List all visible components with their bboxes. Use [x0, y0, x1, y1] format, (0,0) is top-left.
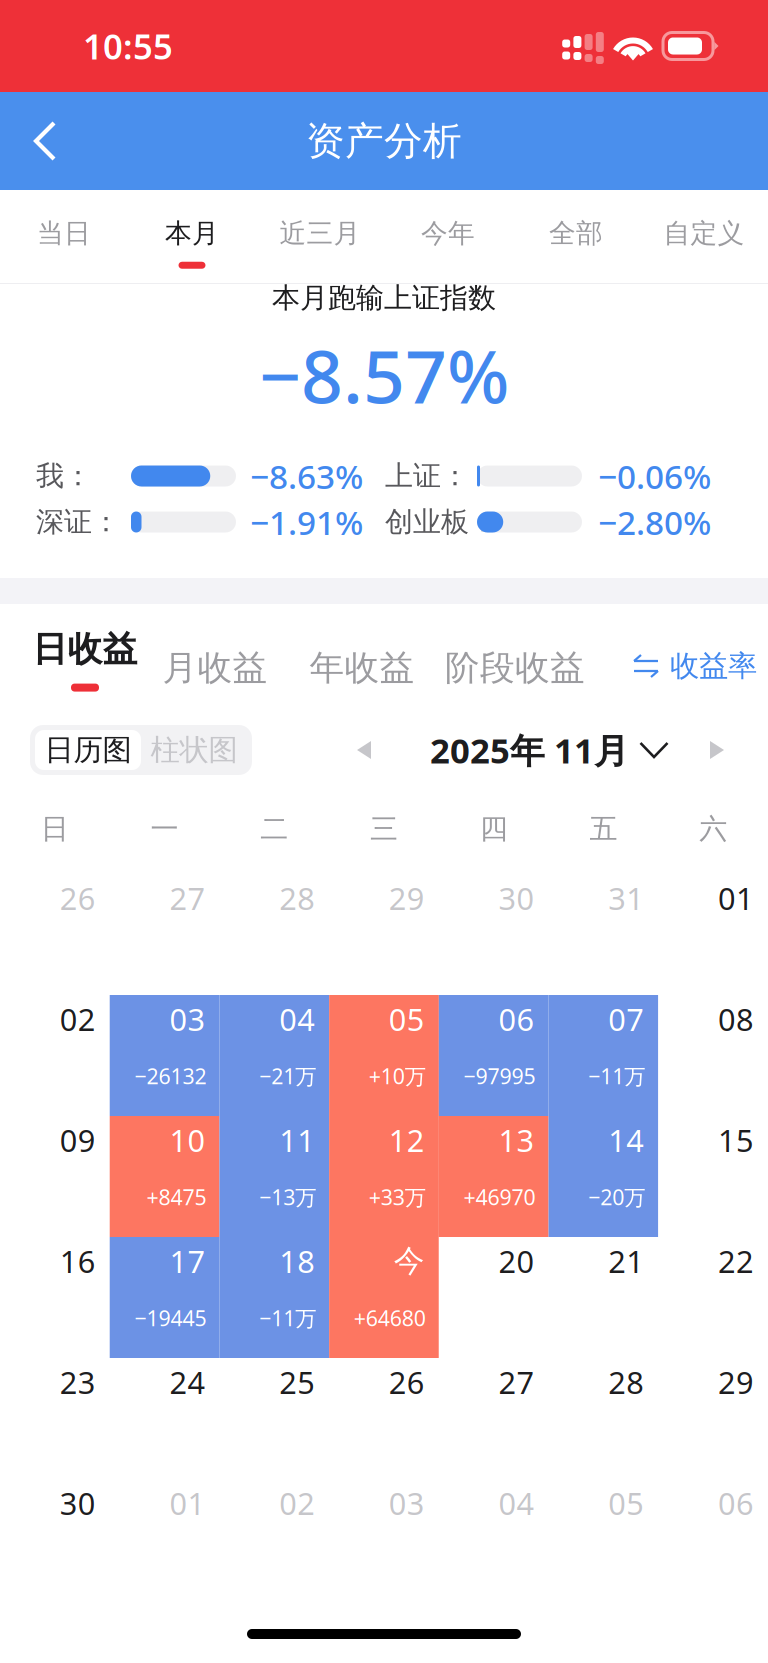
button[interactable]: 柱状图 — [141, 730, 247, 770]
button[interactable]: 近三月 — [256, 190, 384, 283]
staticText: 柱状图 — [150, 732, 237, 768]
button[interactable]: 30 — [439, 874, 549, 995]
button[interactable]: Back — [0, 92, 94, 190]
button[interactable]: 当日 — [0, 190, 128, 283]
button[interactable]: 29 — [658, 1358, 768, 1479]
staticText: 全部 — [549, 217, 603, 250]
staticText: 日历图 — [44, 732, 131, 768]
staticText: −20万 — [588, 1183, 645, 1211]
button[interactable]: 28 — [549, 1358, 658, 1479]
button[interactable]: 28 — [219, 874, 329, 995]
button[interactable]: 01 — [110, 1479, 219, 1600]
staticText: 日收益 — [32, 628, 137, 671]
button[interactable]: 日历图 — [35, 730, 141, 770]
staticText: 近三月 — [279, 217, 360, 250]
staticText: 当日 — [37, 217, 91, 250]
staticText: 06 — [499, 999, 535, 1039]
button[interactable]: 阶段收益 — [440, 604, 590, 700]
staticText: 20 — [499, 1241, 535, 1281]
staticText: 05 — [608, 1483, 644, 1523]
staticText: 28 — [279, 878, 315, 918]
button[interactable]: 10 — [110, 1116, 219, 1237]
button[interactable]: 09 — [0, 1116, 110, 1237]
staticText: 日 — [41, 812, 69, 846]
staticText: 07 — [608, 999, 644, 1039]
staticText: +8475 — [146, 1183, 206, 1211]
staticText: 30 — [499, 878, 535, 918]
staticText: 二 — [260, 812, 288, 846]
button[interactable]: 14 — [549, 1116, 658, 1237]
button[interactable]: 11 — [219, 1116, 329, 1237]
button[interactable]: 17 — [110, 1237, 219, 1358]
button[interactable]: 27 — [110, 874, 219, 995]
staticText: 15 — [718, 1120, 754, 1160]
staticText: +64680 — [354, 1304, 426, 1332]
button[interactable]: 21 — [549, 1237, 658, 1358]
button[interactable]: 26 — [0, 874, 110, 995]
staticText: 三 — [370, 812, 398, 846]
button[interactable]: 23 — [0, 1358, 110, 1479]
staticText: 我： — [36, 459, 92, 493]
staticText: +46970 — [464, 1183, 536, 1211]
button[interactable]: 06 — [439, 995, 549, 1116]
staticText: 10 — [169, 1120, 205, 1160]
button[interactable]: 24 — [110, 1358, 219, 1479]
button[interactable]: 04 — [219, 995, 329, 1116]
button[interactable]: 31 — [549, 874, 658, 995]
staticText: 阶段收益 — [445, 647, 585, 689]
button[interactable]: 01 — [658, 874, 768, 995]
button[interactable]: 18 — [219, 1237, 329, 1358]
button[interactable]: 02 — [0, 995, 110, 1116]
button[interactable]: 自定义 — [640, 190, 768, 283]
button[interactable]: 12 — [329, 1116, 439, 1237]
button[interactable]: 今 — [329, 1237, 439, 1358]
button[interactable]: 05 — [329, 995, 439, 1116]
button[interactable]: 02 — [219, 1479, 329, 1600]
button[interactable]: 2025年 11月 — [430, 700, 680, 800]
staticText: −1.91% — [250, 500, 363, 544]
button[interactable]: 本月 — [128, 190, 256, 283]
button[interactable]: 15 — [658, 1116, 768, 1237]
staticText: 14 — [608, 1120, 644, 1160]
button[interactable]: 13 — [439, 1116, 549, 1237]
button[interactable]: Previous month — [334, 700, 394, 800]
staticText: −97995 — [464, 1062, 536, 1090]
button[interactable]: 今年 — [384, 190, 512, 283]
staticText: −19445 — [134, 1304, 206, 1332]
button[interactable]: 16 — [0, 1237, 110, 1358]
button[interactable]: 年收益 — [302, 604, 422, 700]
staticText: −26132 — [134, 1062, 206, 1090]
button[interactable]: 22 — [658, 1237, 768, 1358]
staticText: 26 — [389, 1362, 425, 1402]
staticText: 年收益 — [309, 647, 414, 689]
staticText: −2.80% — [598, 500, 711, 544]
button[interactable]: Next month — [687, 700, 747, 800]
button[interactable]: 07 — [549, 995, 658, 1116]
button[interactable]: 29 — [329, 874, 439, 995]
button[interactable]: 06 — [658, 1479, 768, 1600]
staticText: 12 — [389, 1120, 425, 1160]
button[interactable]: 30 — [0, 1479, 110, 1600]
button[interactable]: 收益率 — [632, 604, 762, 700]
staticText: 上证： — [385, 459, 469, 493]
button[interactable]: 04 — [439, 1479, 549, 1600]
button[interactable]: 26 — [329, 1358, 439, 1479]
button[interactable]: 20 — [439, 1237, 549, 1358]
staticText: 09 — [60, 1120, 96, 1160]
button[interactable]: 月收益 — [155, 604, 275, 700]
button[interactable]: 日收益 — [25, 604, 145, 700]
button[interactable]: 25 — [219, 1358, 329, 1479]
staticText: 18 — [279, 1241, 315, 1281]
staticText: 05 — [389, 999, 425, 1039]
staticText: 04 — [499, 1483, 535, 1523]
button[interactable]: 08 — [658, 995, 768, 1116]
button[interactable]: 27 — [439, 1358, 549, 1479]
staticText: 深证： — [36, 505, 120, 539]
staticText: 16 — [60, 1241, 96, 1281]
button[interactable]: 全部 — [512, 190, 640, 283]
button[interactable]: 03 — [110, 995, 219, 1116]
staticText: −8.57% — [259, 326, 509, 424]
staticText: 25 — [279, 1362, 315, 1402]
button[interactable]: 05 — [549, 1479, 658, 1600]
button[interactable]: 03 — [329, 1479, 439, 1600]
